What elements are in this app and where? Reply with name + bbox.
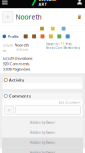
button[interactable]: Hidden by Owner — [2, 128, 83, 138]
staticText: 9,898 Pageviews — [2, 66, 30, 72]
staticText: Deviant for 11 Years — [45, 42, 71, 46]
staticText: ART — [39, 2, 47, 7]
button[interactable]: Write a comment — [15, 106, 80, 115]
button[interactable]: Badge 1 — [37, 27, 47, 30]
button[interactable]: Gallery tab 4 — [47, 32, 55, 41]
button[interactable]: Badge 2 — [47, 27, 58, 30]
button[interactable]: Menu — [0, 0, 11, 8]
button[interactable]: Gallery tab 2 — [30, 32, 38, 41]
button[interactable]: Gallery tab 1 — [21, 32, 30, 41]
staticText: Hidden by Owner — [30, 141, 55, 144]
staticText: Hidden by Owner — [30, 131, 55, 134]
button[interactable]: Gallery tab 6 — [63, 32, 72, 41]
button[interactable]: Profile — [0, 32, 21, 41]
staticText: Hidden by Owner — [30, 121, 55, 124]
button[interactable]: DeviantArt Home — [31, 0, 57, 8]
button[interactable]: Core member badge — [76, 14, 82, 19]
button[interactable]: Hidden by Owner — [2, 138, 83, 148]
button[interactable]: Account — [77, 0, 85, 8]
staticText: DEVIANT — [39, 0, 57, 2]
button[interactable]: Gallery tab 3 — [38, 32, 47, 41]
staticText: Nooreth — [14, 42, 28, 48]
staticText: Add a Comment — [58, 101, 80, 104]
staticText: Needs Core Membership — [45, 46, 80, 50]
button[interactable]: Hidden by Owner — [2, 118, 83, 128]
staticText: Nooreth — [15, 12, 41, 21]
staticText: Hidden by Owner — [30, 151, 55, 153]
button[interactable]: Hidden by Owner — [2, 148, 83, 153]
staticText: Activity — [9, 77, 24, 83]
staticText: Profile — [7, 34, 18, 39]
staticText: Unknown — [15, 48, 28, 51]
button[interactable]: Gallery tab 5 — [55, 32, 63, 41]
button[interactable]: Badge 3 — [58, 27, 69, 30]
button[interactable]: Add a Comment — [58, 101, 80, 104]
staticText: 920 Comments — [2, 61, 29, 66]
staticText: Comments — [9, 93, 31, 99]
staticText: 63,539 Deviations — [2, 55, 32, 61]
staticText: Deviant — [2, 42, 13, 53]
